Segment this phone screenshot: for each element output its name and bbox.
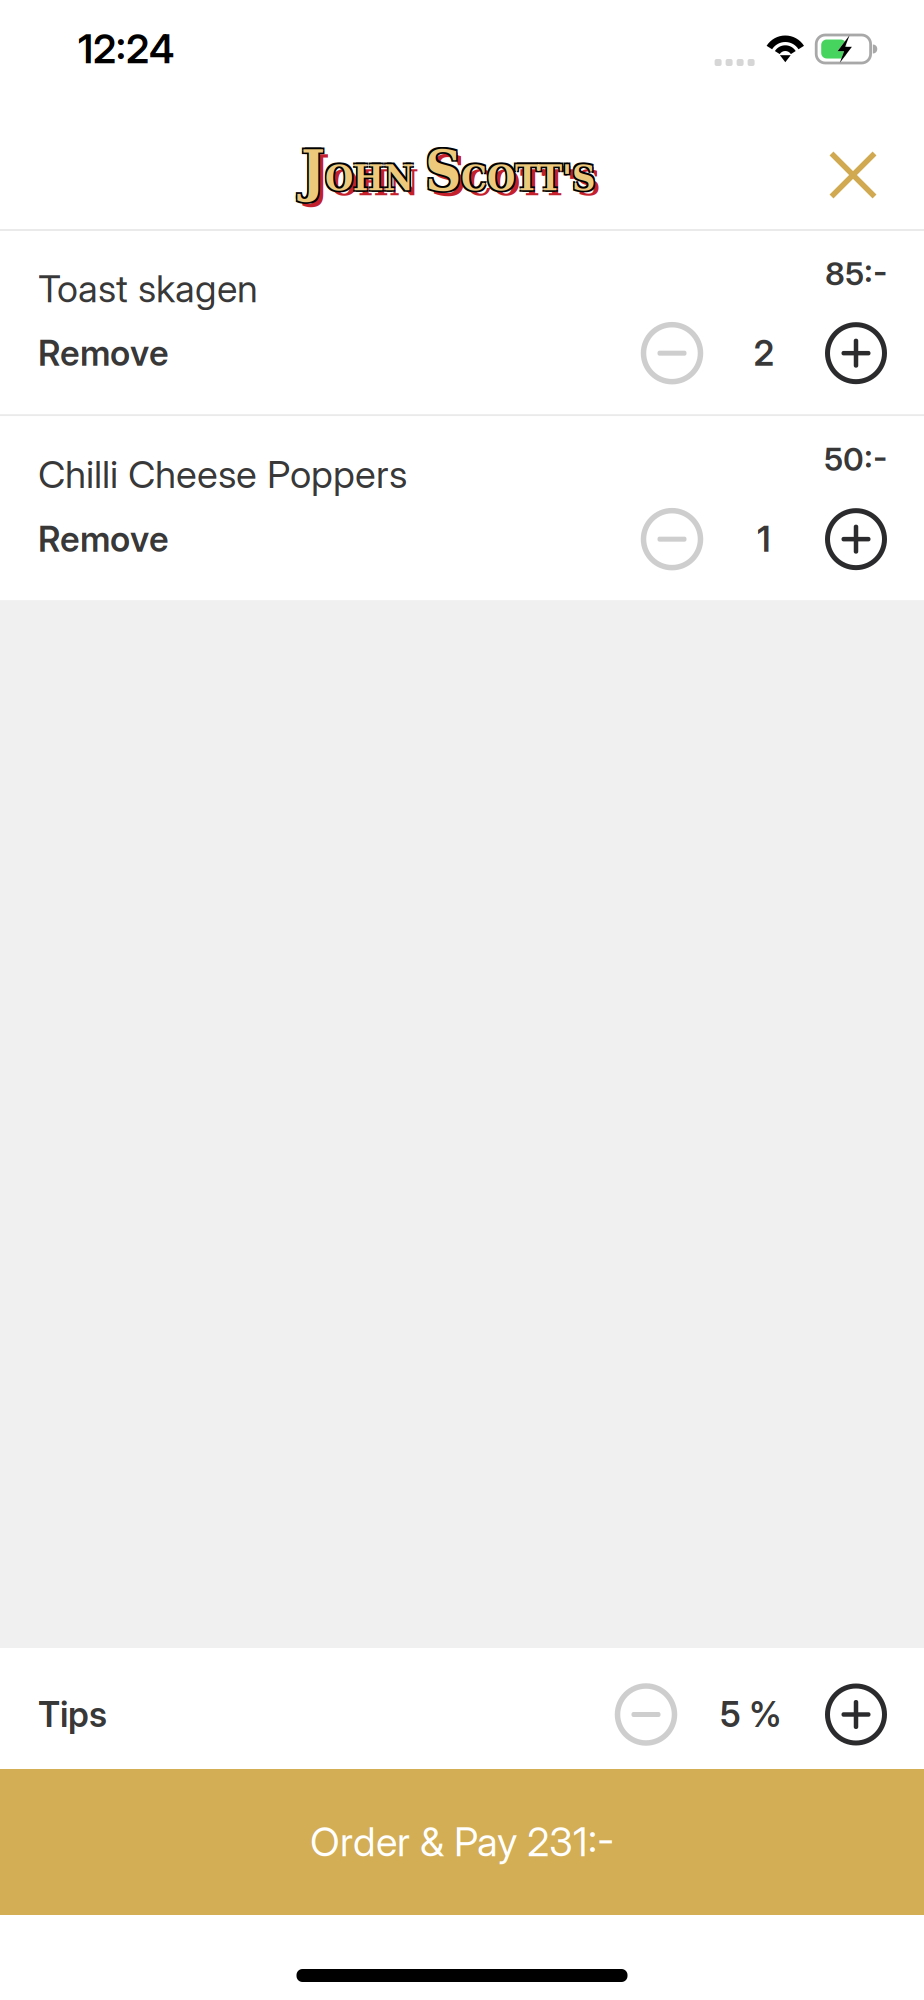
staticText: JOHN SCOTT'S	[299, 137, 593, 201]
button[interactable]: Increase	[825, 508, 887, 570]
button[interactable]: Decrease	[615, 1683, 677, 1745]
staticText: JOHN SCOTT'S	[303, 140, 597, 204]
staticText: 85:-	[825, 254, 887, 293]
staticText: 1	[757, 518, 771, 560]
staticText: Toast skagen	[38, 266, 258, 311]
button[interactable]: Decrease	[641, 508, 703, 570]
button[interactable]: Increase	[825, 1683, 887, 1745]
staticText: JOHN SCOTT'S	[299, 140, 593, 204]
button[interactable]: Decrease	[641, 322, 703, 384]
staticText: Remove	[38, 518, 169, 560]
button[interactable]: Order & Pay 231:-	[0, 1769, 924, 1915]
staticText: Remove	[38, 332, 169, 374]
staticText: Chilli Cheese Poppers	[38, 451, 407, 497]
button[interactable]: Increase	[825, 322, 887, 384]
staticText: JOHN SCOTT'S	[306, 143, 600, 207]
button[interactable]: Close	[805, 113, 924, 214]
button[interactable]: Remove	[38, 510, 169, 568]
staticText: Order & Pay 231:-	[310, 1818, 614, 1866]
staticText: 50:-	[824, 440, 887, 478]
button[interactable]: Remove	[38, 324, 169, 382]
staticText: 5 %	[720, 1693, 782, 1735]
staticText: 12:24	[78, 25, 174, 73]
staticText: 2	[753, 332, 774, 374]
staticText: Tips	[38, 1693, 107, 1735]
staticText: JOHN SCOTT'S	[301, 138, 595, 202]
staticText: JOHN SCOTT'S	[303, 137, 597, 201]
